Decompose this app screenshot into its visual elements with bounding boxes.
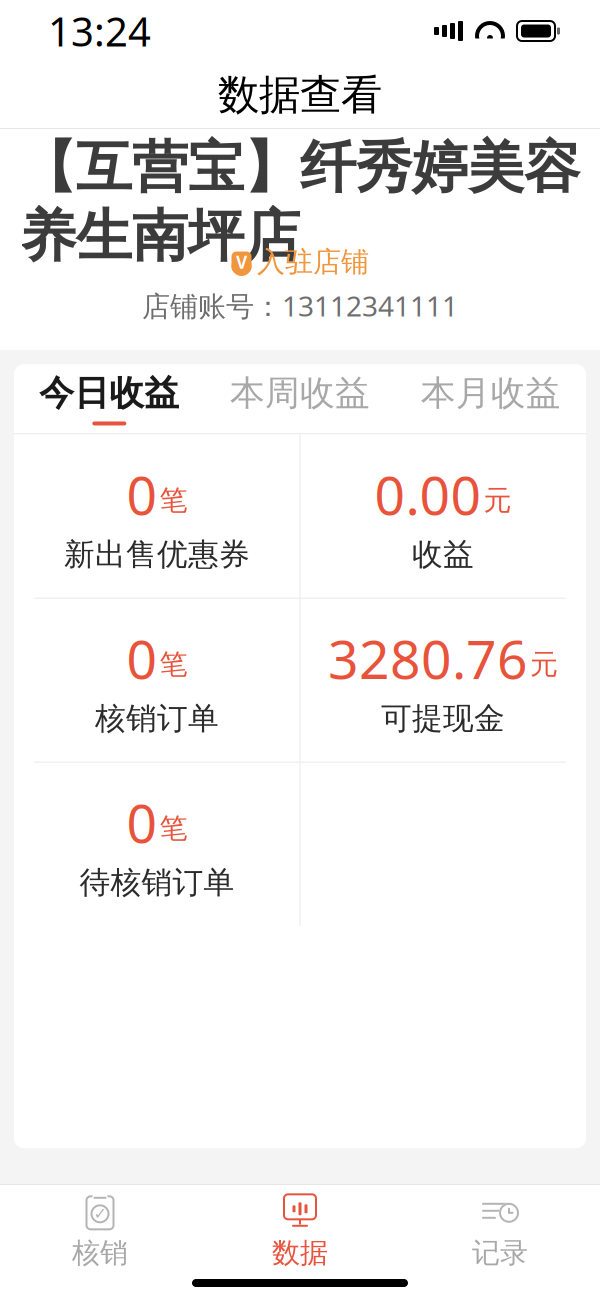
staticText: 收益	[412, 536, 474, 573]
staticText: V	[236, 250, 247, 273]
staticText: 核销	[72, 1236, 128, 1270]
staticText: 笔	[159, 647, 187, 682]
button[interactable]: V	[231, 245, 369, 279]
staticText: 今日收益	[39, 372, 179, 414]
button[interactable]: 0	[14, 599, 300, 762]
staticText: 店铺账号：13112341111	[142, 287, 458, 324]
staticText: 3280.76	[328, 623, 528, 694]
staticText: 数据查看	[218, 70, 382, 120]
button[interactable]: 记录	[400, 1185, 600, 1277]
staticText: 【互营宝】纤秀婷美容养生南坪店	[20, 133, 580, 271]
staticText: 元	[530, 647, 558, 682]
button[interactable]: 3280.76	[300, 599, 586, 762]
staticText: 0	[126, 623, 157, 694]
button[interactable]: 数据	[200, 1185, 400, 1277]
button[interactable]: ✓	[0, 1185, 200, 1277]
staticText: 待核销订单	[79, 864, 234, 901]
staticText: 笔	[159, 811, 187, 846]
staticText: 13:24	[48, 4, 151, 57]
staticText: 核销订单	[95, 700, 219, 737]
staticText: 0	[126, 459, 157, 530]
staticText: 记录	[472, 1236, 528, 1270]
staticText: 入驻店铺	[257, 245, 369, 279]
staticText: ✓	[93, 1205, 106, 1223]
staticText: 0.00	[374, 459, 481, 530]
button[interactable]: 今日收益	[14, 364, 205, 433]
staticText: 0	[126, 787, 157, 858]
button[interactable]: 本周收益	[205, 364, 395, 433]
button[interactable]: 0	[14, 435, 300, 598]
staticText: 本月收益	[421, 372, 561, 414]
button[interactable]: 本月收益	[395, 364, 586, 433]
button[interactable]: 0.00	[300, 435, 586, 598]
staticText: 元	[483, 483, 511, 518]
staticText: 可提现金	[381, 700, 505, 737]
staticText: 本周收益	[230, 372, 370, 414]
staticText: 笔	[159, 483, 187, 518]
staticText: 数据	[272, 1236, 328, 1270]
staticText: 新出售优惠券	[64, 536, 250, 573]
button[interactable]: 0	[14, 763, 300, 926]
